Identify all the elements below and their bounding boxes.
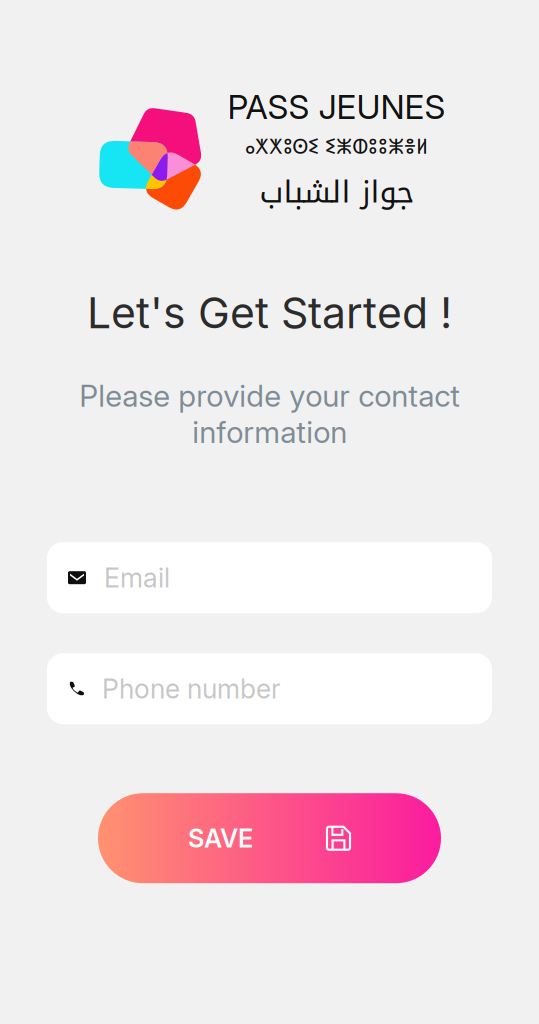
staticText: Please provide your contact information bbox=[79, 378, 460, 450]
staticText: ⴰⵅⵅⵓⵙⵉ ⵉⵥⵀⵓⵓⵥⴻⵍ bbox=[245, 131, 428, 160]
staticText: SAVE bbox=[188, 823, 253, 854]
staticText: Phone number bbox=[102, 673, 281, 705]
staticText: Email bbox=[104, 562, 170, 594]
button[interactable]: SAVE bbox=[98, 793, 441, 883]
button[interactable]: Phone number bbox=[47, 653, 492, 724]
staticText: PASS JEUNES bbox=[227, 87, 445, 127]
staticText: Let's Get Started ! bbox=[87, 287, 452, 339]
button[interactable]: Email bbox=[47, 542, 492, 613]
staticText: جواز الشباب bbox=[259, 163, 414, 221]
